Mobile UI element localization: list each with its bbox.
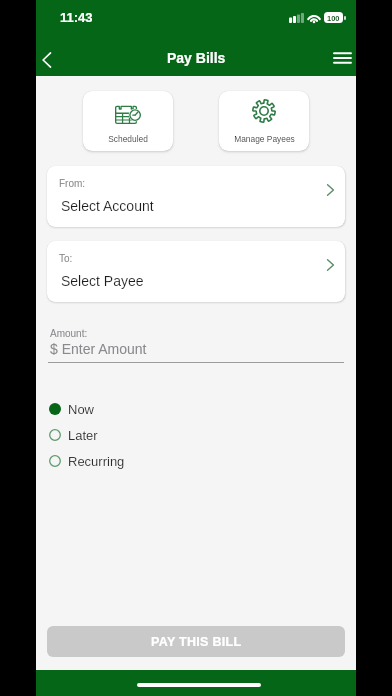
button[interactable]: To:	[47, 241, 345, 302]
staticText: Scheduled	[108, 134, 148, 143]
button[interactable]: Later	[36, 422, 356, 448]
staticText: Amount:	[50, 328, 88, 339]
staticText: 11:43	[60, 10, 93, 25]
button[interactable]: Menu	[322, 36, 356, 76]
staticText: $ Enter Amount	[50, 341, 147, 357]
staticText: Select Account	[61, 198, 154, 214]
button[interactable]: Now	[36, 396, 356, 422]
button[interactable]: Manage Payees	[219, 91, 309, 151]
staticText: From:	[59, 178, 86, 189]
staticText: To:	[59, 253, 73, 264]
staticText: Later	[68, 428, 98, 443]
button[interactable]: Scheduled	[83, 91, 173, 151]
staticText: Recurring	[68, 454, 125, 469]
staticText: Manage Payees	[234, 134, 295, 143]
button[interactable]: Recurring	[36, 448, 356, 474]
staticText: Pay Bills	[167, 50, 226, 66]
staticText: 100	[327, 14, 340, 22]
staticText: Now	[68, 402, 95, 417]
button[interactable]: Back	[36, 36, 64, 76]
button[interactable]: PAY THIS BILL	[47, 626, 345, 657]
staticText: PAY THIS BILL	[151, 635, 242, 649]
button[interactable]: From:	[47, 166, 345, 227]
staticText: Select Payee	[61, 273, 144, 289]
